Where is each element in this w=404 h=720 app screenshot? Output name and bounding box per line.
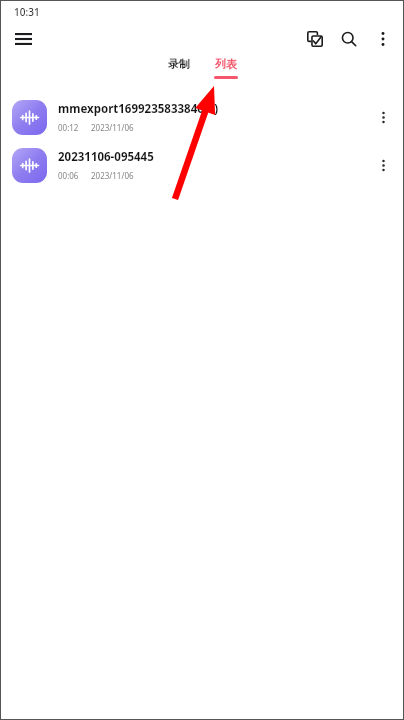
button[interactable]: Select items bbox=[298, 22, 332, 56]
button[interactable]: Item options bbox=[366, 100, 400, 134]
staticText: 10:31 bbox=[14, 5, 40, 19]
button[interactable]: Menu bbox=[6, 22, 40, 56]
button[interactable]: Item options bbox=[366, 148, 400, 182]
staticText: 列表 bbox=[215, 57, 237, 71]
staticText: 录制 bbox=[168, 57, 190, 71]
staticText: 00:12 bbox=[58, 122, 79, 133]
button[interactable]: 列表 bbox=[209, 56, 243, 80]
staticText: 2023/11/06 bbox=[91, 122, 134, 133]
button[interactable]: 20231106-095445 bbox=[1, 141, 403, 189]
staticText: mmexport1699235833846(1) bbox=[58, 101, 219, 117]
button[interactable]: 录制 bbox=[162, 56, 196, 80]
staticText: 2023/11/06 bbox=[91, 170, 134, 181]
button[interactable]: Search bbox=[332, 22, 366, 56]
button[interactable]: mmexport1699235833846(1) bbox=[1, 93, 403, 141]
staticText: 20231106-095445 bbox=[58, 149, 154, 165]
button[interactable]: More options bbox=[366, 22, 400, 56]
staticText: 00:06 bbox=[58, 170, 79, 181]
